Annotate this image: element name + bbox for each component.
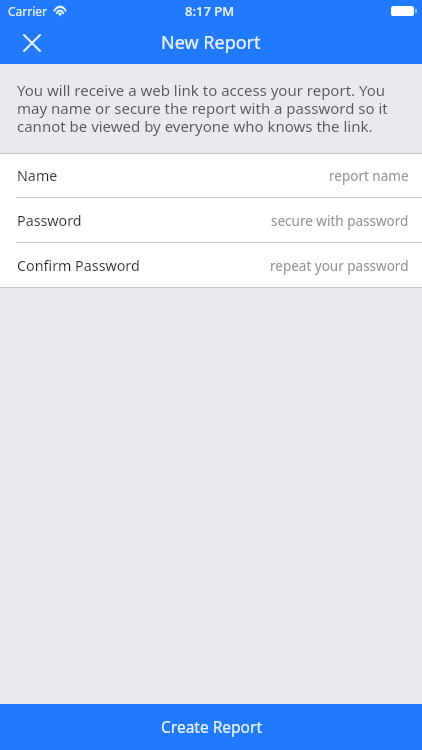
button[interactable]: Name <box>0 153 422 198</box>
staticText: Create Report <box>161 716 262 737</box>
staticText: Name <box>17 166 58 185</box>
staticText: secure with password <box>271 212 409 230</box>
button[interactable]: Confirm Password <box>0 243 422 288</box>
button[interactable]: Close <box>10 21 53 64</box>
staticText: 8:17 PM <box>185 2 235 20</box>
staticText: New Report <box>161 30 261 55</box>
staticText: Carrier <box>8 3 48 19</box>
staticText: Password <box>17 211 82 230</box>
staticText: You will receive a web link to access yo… <box>17 80 407 137</box>
staticText: Confirm Password <box>17 256 140 275</box>
button[interactable]: Create Report <box>0 704 422 750</box>
staticText: repeat your password <box>270 257 409 275</box>
staticText: report name <box>329 167 409 185</box>
button[interactable]: Password <box>0 198 422 243</box>
